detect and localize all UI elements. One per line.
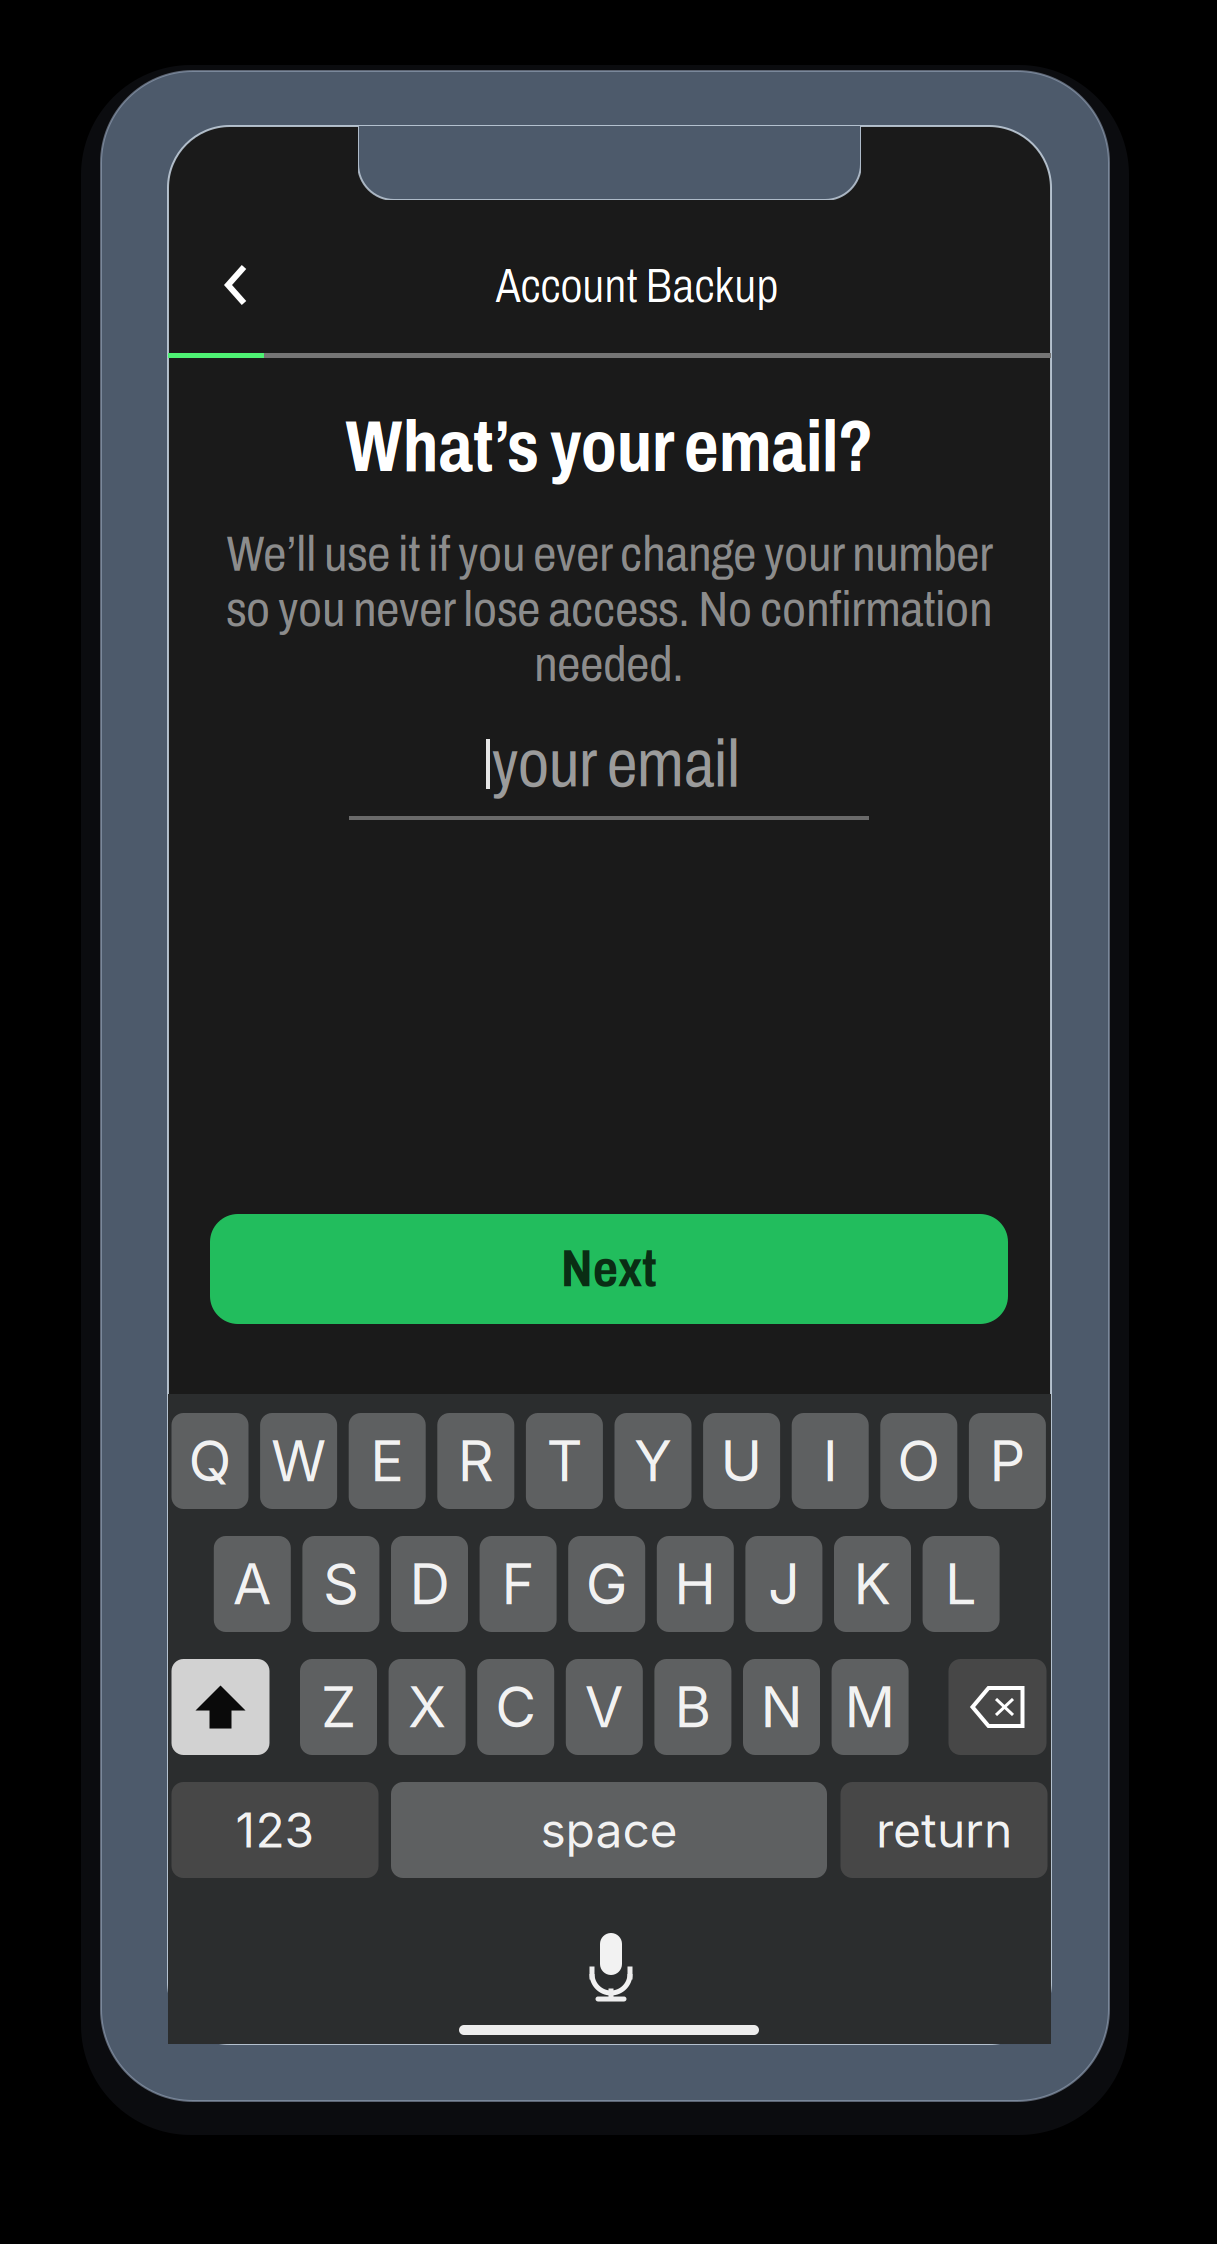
staticText: space [540, 1801, 677, 1859]
staticText: M [845, 1673, 896, 1741]
staticText: your email [492, 728, 740, 800]
button[interactable]: Shift [171, 1659, 269, 1755]
button[interactable]: Q [171, 1413, 248, 1509]
staticText: E [370, 1427, 404, 1495]
staticText: B [674, 1673, 711, 1741]
button[interactable]: Z [300, 1659, 377, 1755]
staticText: 123 [235, 1801, 314, 1859]
button[interactable]: space [391, 1782, 827, 1878]
staticText: R [458, 1427, 494, 1495]
staticText: F [502, 1550, 535, 1618]
button[interactable]: B [654, 1659, 731, 1755]
staticText: A [233, 1550, 272, 1618]
button[interactable]: Back [188, 233, 284, 337]
staticText: C [495, 1673, 536, 1741]
button[interactable]: Delete [948, 1659, 1046, 1755]
button[interactable]: F [480, 1536, 557, 1632]
staticText: Z [321, 1673, 356, 1741]
staticText: U [721, 1427, 763, 1495]
button[interactable]: J [745, 1536, 822, 1632]
button[interactable]: A [214, 1536, 291, 1632]
staticText: X [408, 1673, 446, 1741]
button[interactable]: K [834, 1536, 911, 1632]
button[interactable]: I [792, 1413, 869, 1509]
button[interactable]: N [743, 1659, 820, 1755]
button[interactable]: W [260, 1413, 337, 1509]
staticText: N [760, 1673, 802, 1741]
staticText: What’s your email? [345, 408, 873, 486]
button[interactable]: M [832, 1659, 909, 1755]
button[interactable]: T [526, 1413, 603, 1509]
staticText: T [546, 1427, 582, 1495]
staticText: D [409, 1550, 449, 1618]
staticText: return [876, 1801, 1012, 1859]
button[interactable]: P [969, 1413, 1046, 1509]
button[interactable]: O [880, 1413, 957, 1509]
staticText: G [586, 1550, 628, 1618]
staticText: We’ll use it if you ever change your num… [226, 526, 992, 692]
staticText: I [823, 1427, 838, 1495]
staticText: W [271, 1427, 326, 1495]
staticText: Q [188, 1427, 231, 1495]
button[interactable]: Dictation [563, 1916, 659, 2016]
button[interactable]: V [566, 1659, 643, 1755]
staticText: Next [561, 1241, 657, 1297]
button[interactable]: H [657, 1536, 734, 1632]
button[interactable]: E [349, 1413, 426, 1509]
staticText: H [674, 1550, 716, 1618]
button[interactable]: R [437, 1413, 514, 1509]
staticText: Account Backup [495, 260, 778, 312]
button[interactable]: Y [614, 1413, 691, 1509]
button[interactable]: X [389, 1659, 466, 1755]
button[interactable]: L [923, 1536, 1000, 1632]
staticText: P [989, 1427, 1025, 1495]
staticText: J [768, 1550, 800, 1618]
button[interactable]: G [568, 1536, 645, 1632]
staticText: L [945, 1550, 977, 1618]
staticText: Y [634, 1427, 672, 1495]
button[interactable]: U [703, 1413, 780, 1509]
staticText: V [585, 1673, 624, 1741]
staticText: K [853, 1550, 891, 1618]
button[interactable]: return [840, 1782, 1047, 1878]
button[interactable]: D [391, 1536, 468, 1632]
button[interactable]: Next [210, 1214, 1008, 1324]
staticText: O [897, 1427, 940, 1495]
button[interactable]: C [477, 1659, 554, 1755]
button[interactable]: S [302, 1536, 379, 1632]
button[interactable]: 123 [171, 1782, 378, 1878]
staticText: S [323, 1550, 359, 1618]
